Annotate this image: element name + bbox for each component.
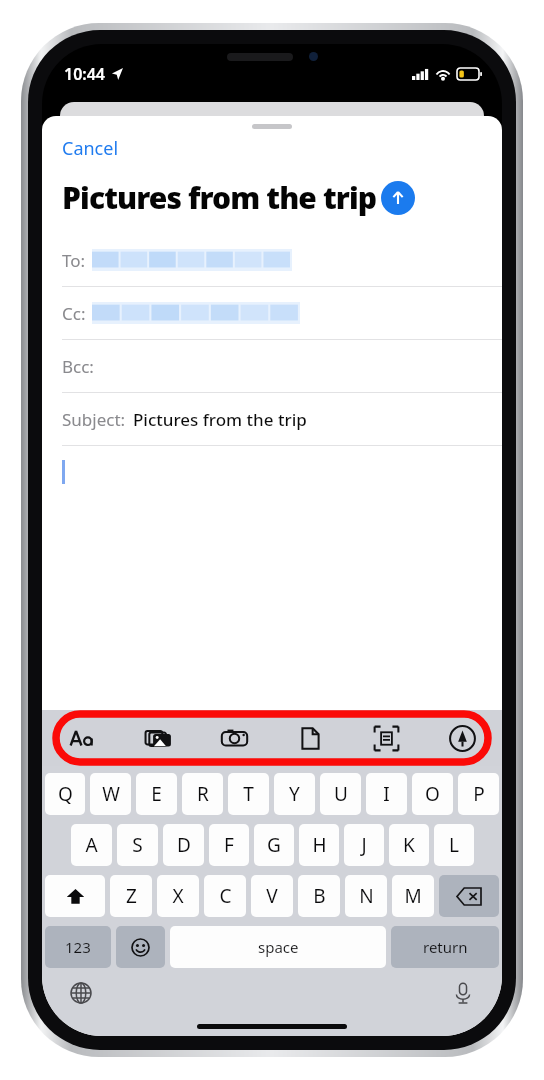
staticText: Pictures from the trip [133,408,307,431]
staticText: D [177,832,191,858]
button[interactable]: Y [274,773,315,815]
button[interactable]: C [204,875,246,917]
button[interactable]: To: [42,234,502,287]
staticText: Cancel [62,136,119,161]
button[interactable]: N [345,875,387,917]
button[interactable]: Markup [436,715,488,761]
staticText: H [312,832,327,858]
button[interactable]: I [366,773,407,815]
button[interactable]: A [71,824,112,866]
button[interactable]: Photo library [132,715,184,761]
staticText: Subject: [62,408,126,431]
button[interactable]: Scan document [360,715,412,761]
button[interactable]: W [90,773,131,815]
staticText: Pictures from the trip [62,177,377,218]
staticText: B [313,883,326,909]
button[interactable]: H [299,824,339,866]
button[interactable]: T [228,773,269,815]
staticText: T [243,781,254,807]
staticText: L [449,832,459,858]
staticText: A [85,832,98,858]
staticText: I [383,781,390,807]
button[interactable]: space [170,926,386,968]
button[interactable]: Change keyboard [64,976,98,1010]
staticText: O [425,781,440,807]
staticText: To: [62,249,86,272]
button[interactable]: Send [381,181,415,215]
staticText: S [132,832,143,858]
button[interactable]: F [209,824,249,866]
button[interactable]: 123 [45,926,111,968]
button[interactable]: Q [45,773,85,815]
staticText: return [423,937,468,957]
button[interactable]: return [391,926,499,968]
staticText: W [102,781,120,807]
button[interactable]: E [136,773,177,815]
button[interactable]: O [412,773,453,815]
staticText: U [334,781,348,807]
staticText: Y [289,781,300,807]
staticText: M [404,883,422,909]
button[interactable]: Backspace [439,875,499,917]
staticText: Cc: [62,302,86,325]
button[interactable]: V [251,875,293,917]
staticText: space [258,937,299,957]
staticText: N [359,883,374,909]
staticText: 10:44 [64,63,106,85]
staticText: F [224,832,234,858]
button[interactable]: R [182,773,223,815]
button[interactable]: U [320,773,361,815]
staticText: V [266,883,278,909]
staticText: Z [126,883,137,909]
button[interactable]: Cc: [42,287,502,340]
button[interactable]: Dictate [446,976,480,1010]
staticText: E [151,781,162,807]
button[interactable]: Take photo [208,715,260,761]
button[interactable]: Text format [56,715,108,761]
button[interactable]: S [117,824,158,866]
staticText: X [172,883,184,909]
button[interactable]: Subject: [42,393,502,446]
button[interactable] [42,446,502,710]
staticText: R [197,781,209,807]
button[interactable]: Cancel [62,134,119,163]
button[interactable]: B [298,875,340,917]
button[interactable]: Bcc: [42,340,502,393]
button[interactable]: P [458,773,499,815]
button[interactable]: L [434,824,474,866]
button[interactable]: M [392,875,434,917]
button[interactable]: Attach document [284,715,336,761]
staticText: Q [58,781,73,807]
staticText: Bcc: [62,355,94,378]
staticText: K [403,832,415,858]
staticText: P [473,781,485,807]
button[interactable]: D [163,824,204,866]
button[interactable]: J [344,824,384,866]
button[interactable]: Shift [45,875,105,917]
button[interactable]: X [157,875,199,917]
staticText: J [361,832,367,858]
button[interactable]: G [254,824,294,866]
button[interactable]: K [389,824,429,866]
staticText: 123 [65,937,91,957]
staticText: G [267,832,281,858]
staticText: C [219,883,232,909]
button[interactable]: Emoji [116,926,165,968]
button[interactable]: Z [110,875,152,917]
